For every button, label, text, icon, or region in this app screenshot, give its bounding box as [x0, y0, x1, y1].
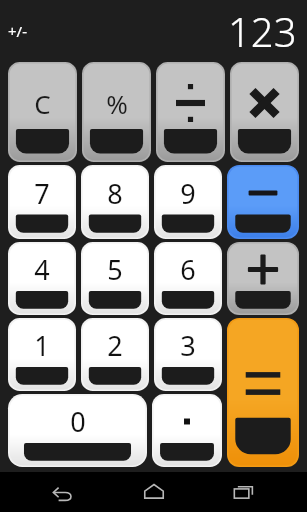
- button[interactable]: Recent apps: [217, 472, 271, 512]
- staticText: 123: [228, 4, 297, 58]
- button[interactable]: Back: [36, 472, 90, 512]
- staticText: 4: [34, 251, 50, 288]
- button[interactable]: 3: [154, 318, 222, 391]
- staticText: 3: [180, 327, 196, 364]
- staticText: 7: [34, 175, 50, 212]
- button[interactable]: 9: [154, 165, 222, 239]
- button[interactable]: 5: [81, 242, 149, 315]
- staticText: 9: [180, 175, 196, 212]
- button[interactable]: 7: [8, 165, 76, 239]
- staticText: C: [34, 86, 51, 121]
- button[interactable]: 1: [8, 318, 76, 391]
- button[interactable]: 6: [154, 242, 222, 315]
- staticText: 5: [107, 251, 123, 288]
- button[interactable]: Plus: [227, 242, 299, 315]
- staticText: %: [106, 86, 128, 121]
- button[interactable]: %: [82, 62, 151, 162]
- button[interactable]: Equals: [227, 318, 299, 467]
- staticText: 0: [70, 403, 86, 440]
- staticText: 2: [107, 327, 123, 364]
- button[interactable]: Minus: [227, 165, 299, 239]
- button[interactable]: 4: [8, 242, 76, 315]
- button[interactable]: 2: [81, 318, 149, 391]
- button[interactable]: C: [8, 62, 77, 162]
- staticText: 1: [34, 327, 50, 364]
- button[interactable]: 8: [81, 165, 149, 239]
- button[interactable]: 0: [8, 394, 147, 467]
- button[interactable]: Decimal point: [152, 394, 222, 467]
- button[interactable]: Multiply: [230, 62, 299, 162]
- staticText: 6: [180, 251, 196, 288]
- button[interactable]: Home: [127, 472, 181, 512]
- staticText: 8: [107, 175, 123, 212]
- staticText: +/-: [8, 21, 27, 41]
- button[interactable]: Divide: [156, 62, 225, 162]
